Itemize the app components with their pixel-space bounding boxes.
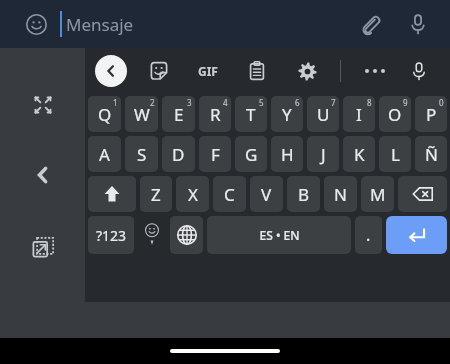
staticText: O bbox=[388, 103, 402, 126]
staticText: 7 bbox=[331, 97, 336, 108]
staticText: ES • EN bbox=[259, 227, 300, 243]
button[interactable]: A bbox=[88, 136, 121, 172]
staticText: T bbox=[246, 103, 256, 126]
staticText: J bbox=[321, 143, 326, 166]
button[interactable]: V bbox=[250, 176, 283, 212]
staticText: ?123 bbox=[96, 226, 127, 245]
button[interactable]: S bbox=[125, 136, 158, 172]
button[interactable]: E bbox=[162, 96, 195, 132]
button[interactable]: Z bbox=[140, 176, 172, 212]
button[interactable]: Back bbox=[95, 55, 127, 87]
staticText: U bbox=[317, 103, 330, 126]
staticText: G bbox=[245, 143, 258, 166]
staticText: 9 bbox=[403, 97, 408, 108]
staticText: 0 bbox=[439, 97, 444, 108]
staticText: X bbox=[188, 183, 198, 206]
button[interactable]: U bbox=[307, 96, 339, 132]
button[interactable]: Enter bbox=[386, 216, 447, 254]
button[interactable]: M bbox=[361, 176, 394, 212]
button[interactable]: N bbox=[324, 176, 357, 212]
staticText: 2 bbox=[150, 97, 155, 108]
staticText: E bbox=[174, 103, 184, 126]
button[interactable]: F bbox=[199, 136, 231, 172]
button[interactable]: ?123 bbox=[88, 216, 134, 254]
staticText: H bbox=[281, 143, 294, 166]
button[interactable]: J bbox=[307, 136, 339, 172]
staticText: V bbox=[261, 183, 272, 206]
button[interactable]: Settings bbox=[291, 55, 323, 87]
staticText: Ñ bbox=[425, 143, 438, 166]
staticText: D bbox=[172, 143, 185, 166]
staticText: Y bbox=[282, 103, 292, 126]
button[interactable]: K bbox=[343, 136, 375, 172]
button[interactable]: Voice input bbox=[400, 6, 436, 42]
button[interactable]: H bbox=[271, 136, 303, 172]
staticText: P bbox=[426, 103, 437, 126]
staticText: . bbox=[366, 224, 371, 246]
button[interactable]: Back bbox=[26, 158, 60, 192]
button[interactable]: X bbox=[176, 176, 209, 212]
button[interactable]: B bbox=[287, 176, 320, 212]
staticText: N bbox=[334, 183, 347, 206]
staticText: Mensaje bbox=[66, 13, 134, 36]
button[interactable]: L bbox=[379, 136, 411, 172]
button[interactable]: C bbox=[213, 176, 246, 212]
button[interactable]: GIF bbox=[191, 54, 225, 88]
staticText: K bbox=[354, 143, 365, 166]
staticText: A bbox=[99, 143, 110, 166]
button[interactable]: D bbox=[162, 136, 195, 172]
staticText: GIF bbox=[198, 63, 218, 79]
staticText: I bbox=[356, 103, 362, 126]
staticText: 3 bbox=[187, 97, 192, 108]
button[interactable]: Open in new window bbox=[26, 230, 60, 264]
staticText: 5 bbox=[259, 97, 264, 108]
button[interactable]: Backspace bbox=[398, 176, 447, 212]
staticText: 6 bbox=[295, 97, 300, 108]
staticText: 1 bbox=[113, 97, 118, 108]
staticText: Z bbox=[151, 183, 161, 206]
staticText: M bbox=[370, 183, 386, 206]
button[interactable]: Change language bbox=[170, 216, 203, 254]
button[interactable]: Attach file bbox=[352, 6, 388, 42]
staticText: F bbox=[211, 143, 220, 166]
button[interactable]: Q bbox=[88, 96, 121, 132]
staticText: L bbox=[391, 143, 400, 166]
button[interactable]: Shift bbox=[88, 176, 136, 212]
button[interactable]: Expand bbox=[26, 88, 60, 122]
staticText: S bbox=[137, 143, 147, 166]
button[interactable]: Stickers bbox=[143, 55, 175, 87]
staticText: W bbox=[134, 103, 150, 126]
button[interactable]: ES • EN bbox=[207, 216, 351, 254]
button[interactable]: W bbox=[125, 96, 158, 132]
staticText: B bbox=[298, 183, 310, 206]
button[interactable]: Y bbox=[271, 96, 303, 132]
button[interactable]: Clipboard bbox=[241, 55, 273, 87]
button[interactable]: Voice typing bbox=[403, 55, 435, 87]
button[interactable]: Emoji bbox=[20, 8, 52, 40]
staticText: R bbox=[210, 103, 221, 126]
button[interactable]: Emoji bbox=[138, 216, 166, 254]
staticText: 4 bbox=[223, 97, 228, 108]
button[interactable]: More options bbox=[359, 55, 391, 87]
button[interactable]: G bbox=[235, 136, 267, 172]
button[interactable]: I bbox=[343, 96, 375, 132]
staticText: 8 bbox=[367, 97, 372, 108]
staticText: Q bbox=[98, 103, 112, 126]
button[interactable]: Ñ bbox=[415, 136, 447, 172]
button[interactable]: . bbox=[355, 216, 382, 254]
button[interactable]: T bbox=[235, 96, 267, 132]
button[interactable]: R bbox=[199, 96, 231, 132]
button[interactable]: P bbox=[415, 96, 447, 132]
staticText: C bbox=[224, 183, 235, 206]
button[interactable]: O bbox=[379, 96, 411, 132]
